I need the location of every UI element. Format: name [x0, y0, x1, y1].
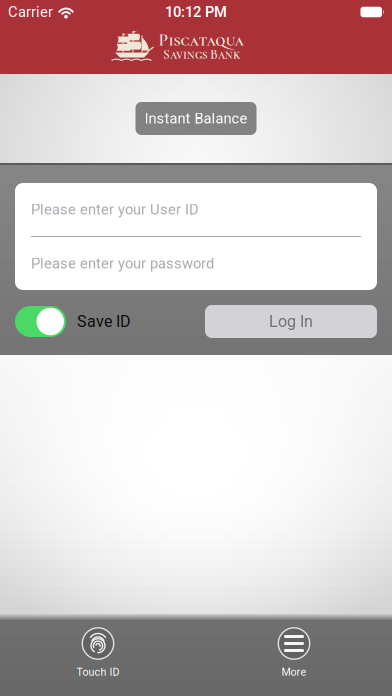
staticText: Piscataqua: [158, 29, 244, 50]
staticText: Savings Bank: [163, 46, 240, 62]
textField[interactable]: Please enter your User ID: [31, 197, 377, 222]
staticText: Carrier: [8, 4, 53, 20]
staticText: Please enter your password: [31, 251, 312, 276]
button[interactable]: Instant Balance: [135, 102, 256, 135]
staticText: Please enter your User ID: [31, 201, 199, 218]
button[interactable]: Log In: [205, 305, 377, 338]
staticText: Save ID: [77, 312, 131, 331]
button[interactable]: Save ID: [15, 306, 66, 337]
button[interactable]: More: [196, 627, 392, 678]
staticText: More: [281, 666, 306, 678]
textField[interactable]: Please enter your password: [31, 251, 377, 276]
staticText: Instant Balance: [144, 110, 247, 127]
staticText: 10:12 PM: [165, 4, 227, 20]
button[interactable]: Touch ID: [0, 627, 196, 678]
staticText: Please enter your password: [31, 255, 214, 272]
staticText: Log In: [269, 312, 313, 331]
staticText: Touch ID: [76, 666, 119, 678]
staticText: Please enter your User ID: [31, 197, 287, 222]
